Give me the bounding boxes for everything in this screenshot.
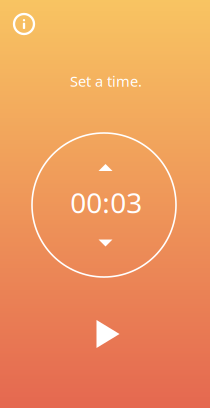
button[interactable]: Decrease time — [86, 227, 124, 258]
button[interactable]: Info — [6, 6, 42, 42]
staticText: 00:03 — [70, 184, 142, 221]
staticText: Set a time. — [70, 71, 142, 91]
button[interactable]: Start timer — [82, 306, 133, 362]
button[interactable]: Increase time — [86, 152, 124, 183]
